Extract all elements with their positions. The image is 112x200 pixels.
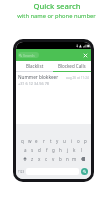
staticText: e	[35, 138, 38, 144]
staticText: q	[21, 138, 24, 144]
button[interactable]: Blocked Calls	[53, 61, 91, 71]
staticText: Blacklist	[26, 63, 44, 69]
staticText: z	[31, 156, 34, 162]
staticText: y	[56, 138, 59, 144]
staticText: j	[67, 147, 69, 153]
button[interactable]: p	[82, 136, 89, 145]
button[interactable]: Nummer blokkeer	[16, 72, 91, 86]
button[interactable]: Blacklist	[16, 61, 53, 71]
staticText: n	[66, 156, 69, 162]
button[interactable]: e	[33, 136, 40, 145]
button[interactable]: t	[47, 136, 54, 145]
staticText: m	[72, 156, 77, 162]
staticText: Quick search	[33, 1, 81, 11]
button[interactable]: f	[43, 145, 50, 154]
button[interactable]: r	[40, 136, 47, 145]
button[interactable]: h	[57, 145, 64, 154]
button[interactable]: k	[71, 145, 78, 154]
staticText: r	[43, 138, 45, 144]
button[interactable]: c	[43, 154, 50, 163]
button[interactable]: d	[36, 145, 43, 154]
staticText: g	[52, 147, 55, 153]
staticText: l	[81, 147, 83, 153]
staticText: k	[73, 147, 76, 153]
staticText: ?123	[18, 170, 25, 174]
staticText: Nummer blokkeer	[18, 74, 59, 80]
button[interactable]: w	[26, 136, 33, 145]
staticText: v	[52, 156, 55, 162]
button[interactable]: z	[29, 154, 36, 163]
button[interactable]: x	[36, 154, 43, 163]
staticText: aug 26 at 11:24	[66, 76, 89, 80]
staticText: d	[38, 147, 41, 153]
staticText: u	[63, 138, 66, 144]
staticText: s	[31, 147, 34, 153]
staticText: f	[46, 147, 48, 153]
button[interactable]: Shift	[20, 154, 29, 163]
staticText: w	[28, 138, 32, 144]
button[interactable]: y	[54, 136, 61, 145]
button[interactable]: n	[64, 154, 71, 163]
button[interactable]: Search	[81, 168, 88, 175]
button[interactable]: u	[61, 136, 68, 145]
button[interactable]: m	[71, 154, 78, 163]
button[interactable]: q	[19, 136, 26, 145]
staticText: c	[45, 156, 48, 162]
button[interactable]: g	[50, 145, 57, 154]
staticText: a	[24, 147, 27, 153]
button[interactable]: Symbols	[18, 168, 25, 175]
button[interactable]: i	[68, 136, 75, 145]
staticText: h	[59, 147, 62, 153]
button[interactable]: Close search	[80, 50, 90, 60]
staticText: o	[77, 138, 80, 144]
button[interactable]: Backspace	[78, 154, 87, 163]
button[interactable]: o	[75, 136, 82, 145]
button[interactable]: s	[29, 145, 36, 154]
button[interactable]: l	[78, 145, 85, 154]
staticText: Blocked Calls	[58, 63, 86, 69]
staticText: b	[59, 156, 62, 162]
staticText: i	[71, 138, 73, 144]
staticText: p	[84, 138, 87, 144]
staticText: t	[50, 138, 52, 144]
button[interactable]: j	[64, 145, 71, 154]
button[interactable]: Search	[18, 52, 39, 58]
staticText: Search	[23, 53, 35, 58]
button[interactable]: a	[22, 145, 29, 154]
staticText: with name or phone number	[17, 12, 96, 20]
staticText: x	[38, 156, 41, 162]
button[interactable]: v	[50, 154, 57, 163]
button[interactable]: b	[57, 154, 64, 163]
staticText: +31 6 12 34 56 78	[18, 81, 49, 86]
